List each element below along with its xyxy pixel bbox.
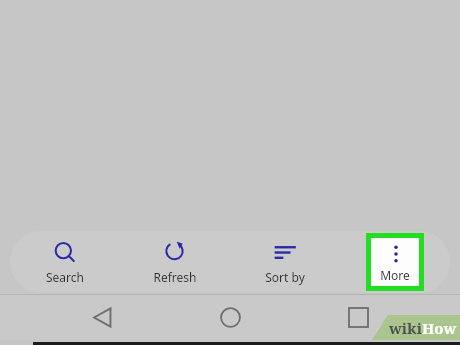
staticText: Search	[46, 269, 84, 285]
staticText: More	[380, 267, 410, 283]
staticText: Refresh	[153, 269, 197, 285]
button[interactable]: Home	[204, 295, 256, 340]
button[interactable]: Search	[10, 231, 120, 293]
button[interactable]: Recents	[332, 295, 384, 340]
button[interactable]: Sort by	[230, 231, 340, 293]
staticText: How	[422, 318, 457, 338]
button[interactable]: Back	[76, 295, 128, 340]
button[interactable]: Refresh	[120, 231, 230, 293]
button[interactable]: More	[371, 238, 419, 286]
staticText: Sort by	[265, 269, 305, 285]
staticText: wiki	[389, 318, 422, 338]
